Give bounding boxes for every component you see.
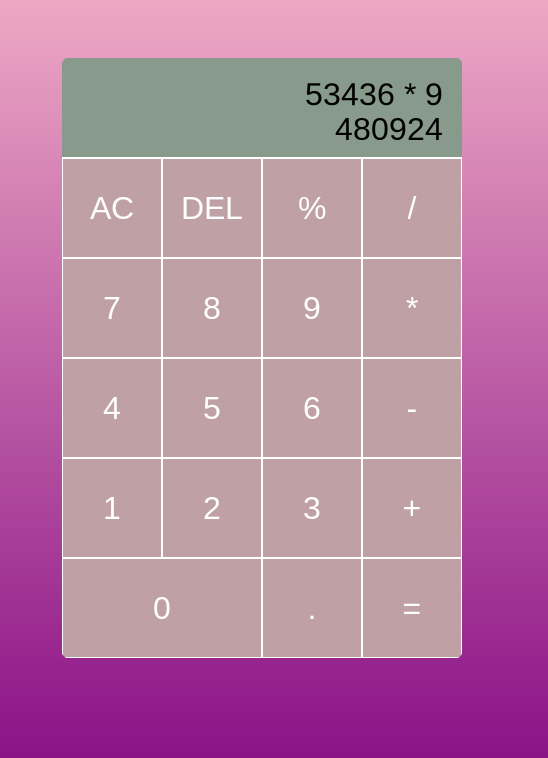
staticText: + <box>402 490 421 526</box>
staticText: 9 <box>303 290 321 326</box>
button[interactable]: 8 <box>162 258 262 358</box>
staticText: 8 <box>203 290 221 326</box>
staticText: 5 <box>203 390 221 426</box>
button[interactable]: * <box>362 258 462 358</box>
staticText: - <box>406 390 417 426</box>
button[interactable]: 2 <box>162 458 262 558</box>
button[interactable]: . <box>262 558 362 658</box>
staticText: * <box>406 290 418 326</box>
button[interactable]: / <box>362 158 462 258</box>
staticText: 6 <box>303 390 321 426</box>
staticText: 4 <box>103 390 121 426</box>
button[interactable]: + <box>362 458 462 558</box>
staticText: 1 <box>103 490 121 526</box>
staticText: % <box>298 190 326 226</box>
staticText: 7 <box>103 290 121 326</box>
button[interactable]: AC <box>62 158 162 258</box>
button[interactable]: 1 <box>62 458 162 558</box>
staticText: 480924 <box>335 111 443 147</box>
staticText: 3 <box>303 490 321 526</box>
staticText: . <box>307 590 316 626</box>
staticText: 53436 * 9 <box>305 76 443 112</box>
button[interactable]: 5 <box>162 358 262 458</box>
button[interactable]: 6 <box>262 358 362 458</box>
button[interactable]: - <box>362 358 462 458</box>
button[interactable]: 0 <box>62 558 262 658</box>
button[interactable]: 7 <box>62 258 162 358</box>
staticText: 0 <box>153 590 171 626</box>
staticText: 2 <box>203 490 221 526</box>
staticText: DEL <box>181 190 243 226</box>
button[interactable]: = <box>362 558 462 658</box>
staticText: AC <box>90 190 134 226</box>
button[interactable]: 4 <box>62 358 162 458</box>
button[interactable]: 3 <box>262 458 362 558</box>
staticText: = <box>402 590 421 626</box>
staticText: / <box>407 190 416 226</box>
button[interactable]: DEL <box>162 158 262 258</box>
button[interactable]: % <box>262 158 362 258</box>
button[interactable]: 9 <box>262 258 362 358</box>
